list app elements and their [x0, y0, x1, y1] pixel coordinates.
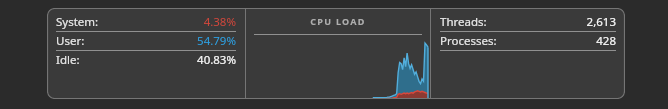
staticText: Processes: — [440, 33, 497, 49]
button[interactable]: CPU LOAD — [246, 8, 430, 99]
staticText: Idle: — [56, 52, 80, 68]
staticText: User: — [56, 33, 85, 49]
staticText: System: — [56, 14, 99, 30]
button[interactable]: Threads: — [431, 8, 625, 99]
staticText: 428 — [596, 33, 616, 49]
staticText: 2,613 — [586, 14, 616, 30]
other: CPU load history graph — [246, 35, 430, 99]
staticText: CPU LOAD — [310, 15, 366, 27]
staticText: 4.38% — [203, 14, 236, 30]
staticText: Threads: — [440, 14, 487, 30]
staticText: 40.83% — [197, 52, 236, 68]
staticText: 54.79% — [197, 33, 236, 49]
button[interactable]: System: — [47, 8, 245, 99]
